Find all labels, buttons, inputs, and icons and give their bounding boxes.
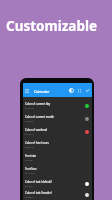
staticText: Color of weekend: [25, 128, 48, 132]
staticText: Color of text (header): [25, 191, 52, 195]
staticText: Color of current month: [25, 115, 55, 119]
button[interactable]: Color of text (header): [23, 190, 92, 200]
staticText: #9E9E9E: [25, 120, 34, 123]
button[interactable]: Color of current day: [23, 99, 92, 112]
button[interactable]: Color of weekend: [23, 125, 92, 138]
staticText: #4CAF50: [25, 107, 35, 110]
button[interactable]: Font face: [23, 164, 92, 177]
button[interactable]: Color of text (default): [23, 177, 92, 190]
staticText: sans-serif: [25, 172, 35, 175]
button[interactable]: Theme: [69, 88, 74, 93]
staticText: #EEEEEE: [25, 196, 34, 199]
staticText: Color of current day: [25, 102, 51, 106]
button[interactable]: Navigate up: [25, 89, 29, 93]
staticText: Normal: [25, 159, 33, 162]
button[interactable]: Font size: [23, 151, 92, 164]
button[interactable]: Customizable: [6, 17, 98, 35]
staticText: #FFFFFF: [25, 185, 34, 188]
staticText: Font size: [25, 154, 37, 158]
staticText: Customizable: [6, 17, 98, 35]
button[interactable]: Done: [85, 88, 90, 93]
staticText: Font face: [25, 167, 37, 171]
button[interactable]: Color of free hours: [23, 138, 92, 151]
staticText: #F44336: [25, 133, 34, 136]
button[interactable]: Grid view: [77, 88, 82, 93]
staticText: Color of text (default): [25, 180, 52, 184]
staticText: Color of free hours: [25, 141, 49, 145]
button[interactable]: Color of current month: [23, 112, 92, 125]
staticText: Calendar: [34, 89, 50, 94]
staticText: #303030: [25, 146, 34, 149]
